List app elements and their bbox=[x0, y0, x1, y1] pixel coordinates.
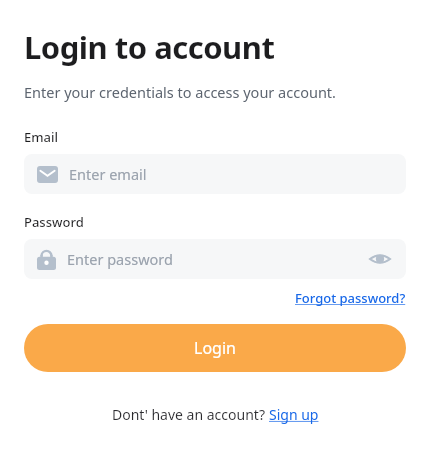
staticText: Enter email bbox=[69, 164, 147, 184]
staticText: Enter password bbox=[67, 249, 367, 269]
staticText: Sign up bbox=[269, 405, 319, 424]
staticText: Login bbox=[194, 337, 236, 359]
button[interactable]: Enter password bbox=[24, 239, 406, 279]
staticText: Login to account bbox=[24, 26, 275, 68]
staticText: Password bbox=[24, 213, 84, 231]
staticText: Dont' have an account? bbox=[112, 405, 269, 424]
staticText: Email bbox=[24, 128, 59, 146]
button[interactable]: Sign up bbox=[269, 405, 319, 424]
staticText: Forgot password? bbox=[295, 289, 406, 307]
button[interactable]: Enter email bbox=[24, 154, 406, 194]
button[interactable]: Forgot password? bbox=[295, 289, 406, 307]
staticText: Enter your credentials to access your ac… bbox=[24, 82, 336, 102]
button[interactable]: Login bbox=[24, 324, 406, 372]
button[interactable]: Show password bbox=[367, 246, 393, 272]
